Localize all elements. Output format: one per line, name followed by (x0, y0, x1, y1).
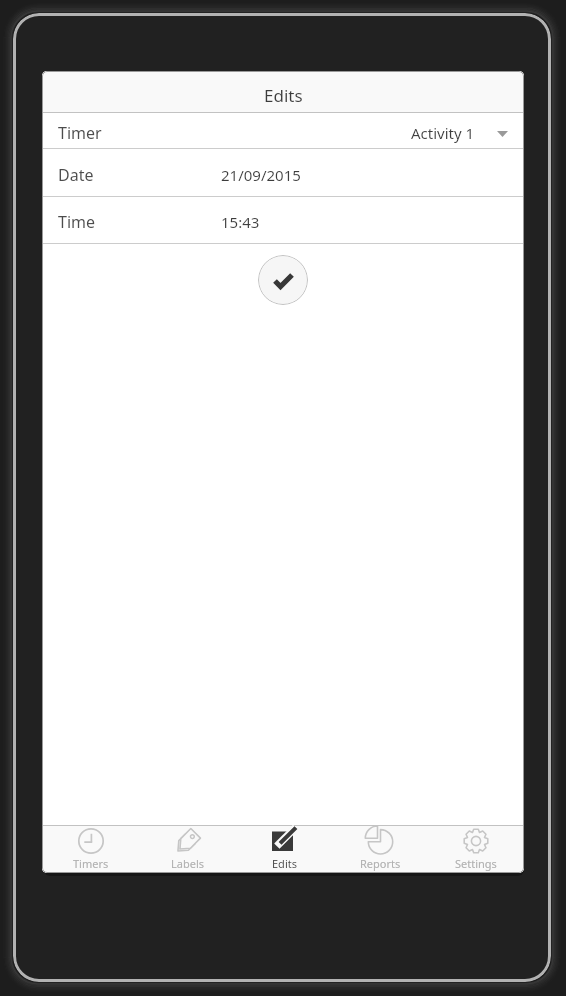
button[interactable]: Time (42, 197, 524, 243)
button[interactable]: Reports (332, 826, 428, 873)
staticText: Reports (360, 856, 401, 871)
staticText: Edits (272, 856, 297, 871)
button[interactable]: Labels (139, 826, 236, 873)
staticText: Date (58, 164, 221, 186)
staticText: Timer (58, 122, 102, 144)
staticText: Activity 1 (411, 123, 475, 143)
staticText: Timers (73, 856, 109, 871)
staticText: 15:43 (221, 212, 260, 232)
staticText: Edits (264, 84, 303, 107)
button[interactable]: Timers (42, 826, 139, 873)
button[interactable] (258, 255, 308, 305)
staticText: Labels (171, 856, 205, 871)
staticText: Time (58, 211, 221, 233)
button[interactable]: Edits (236, 826, 332, 873)
staticText: 21/09/2015 (221, 165, 301, 185)
button[interactable]: Date (42, 149, 524, 196)
staticText: Settings (455, 856, 497, 871)
button[interactable]: Timer (42, 113, 524, 148)
button[interactable]: Settings (428, 826, 524, 873)
